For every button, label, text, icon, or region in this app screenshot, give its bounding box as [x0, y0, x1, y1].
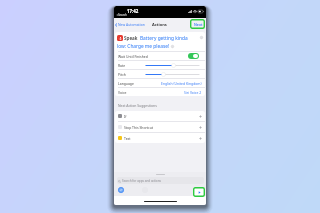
staticText: low: Charge me please! [117, 43, 170, 50]
button[interactable]: Wait Until Finished [118, 52, 199, 60]
staticText: Language [118, 81, 134, 86]
button[interactable]: Search for apps and actions [117, 177, 204, 184]
staticText: Wait Until Finished [118, 54, 148, 59]
staticText: Search for apps and actions [122, 179, 161, 183]
staticText: Voice [118, 90, 127, 95]
button[interactable]: Text [115, 133, 205, 143]
button[interactable]: If [115, 111, 205, 121]
button[interactable]: Next [190, 19, 205, 29]
button[interactable]: Language [118, 79, 202, 87]
staticText: Next [194, 22, 203, 27]
staticText: Rate [118, 63, 126, 68]
staticText: Battery getting kinda [140, 35, 188, 42]
button[interactable]: Voice [118, 88, 202, 96]
staticText: Pitch [118, 72, 126, 77]
staticText: If [124, 114, 127, 119]
button[interactable]: Stop This Shortcut [115, 122, 205, 132]
staticText: Stop This Shortcut [124, 125, 154, 130]
button[interactable]: Shortcuts [118, 187, 124, 193]
staticText: Search [118, 13, 127, 17]
button[interactable]: Play [193, 187, 205, 197]
staticText: Text [124, 136, 131, 141]
staticText: Speak [124, 35, 138, 41]
staticText: Next Action Suggestions [118, 103, 157, 108]
staticText: 17:42 [127, 8, 139, 14]
staticText: New Automation [118, 22, 145, 27]
staticText: Siri Voice 2 [184, 90, 202, 95]
staticText: English (United Kingdom) [161, 81, 202, 86]
button[interactable]: New Automation [115, 22, 145, 27]
staticText: Actions [152, 22, 167, 27]
